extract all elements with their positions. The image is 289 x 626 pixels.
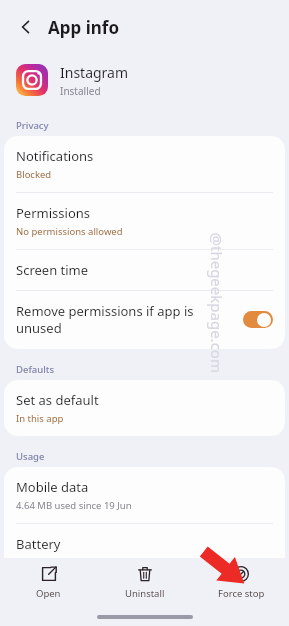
staticText: Defaults [16, 363, 55, 376]
staticText: Blocked [16, 168, 52, 181]
staticText: Installed [60, 84, 101, 98]
staticText: Instagram [60, 63, 129, 82]
button[interactable]: Uninstall [97, 558, 193, 608]
staticText: Storage [16, 592, 64, 610]
staticText: 0% used since last fully charged [16, 556, 158, 569]
staticText: 4.64 MB used since 19 Jun [16, 499, 132, 512]
staticText: In this app [16, 412, 64, 425]
staticText: @thegeekpage.com [206, 232, 226, 373]
staticText: Permissions [16, 204, 91, 222]
staticText: App info [48, 16, 120, 39]
staticText: Mobile data [16, 478, 89, 496]
button[interactable]: Open [0, 558, 97, 608]
staticText: Battery [16, 535, 61, 553]
button[interactable]: Back [12, 13, 40, 41]
staticText: Notifications [16, 147, 94, 165]
staticText: Usage [16, 450, 45, 463]
button[interactable]: Mobile data [4, 467, 285, 523]
button[interactable]: Set as default [4, 380, 285, 436]
staticText: Force stop [218, 587, 265, 600]
button[interactable]: Permissions [4, 193, 285, 249]
button[interactable]: Force stop [193, 558, 289, 608]
staticText: Uninstall [125, 587, 165, 600]
staticText: Set as default [16, 391, 99, 409]
staticText: Screen time [16, 261, 89, 279]
staticText: No permissions allowed [16, 225, 123, 238]
button[interactable]: Storage [4, 581, 285, 621]
staticText: Open [36, 587, 61, 600]
button[interactable]: Screen time [4, 250, 285, 290]
button[interactable]: Notifications [4, 136, 285, 192]
staticText: Remove permissions if app is unused [16, 302, 233, 337]
button[interactable]: Battery [4, 524, 285, 580]
button[interactable]: Remove permissions if app is unused [4, 291, 285, 349]
staticText: Privacy [16, 119, 49, 132]
